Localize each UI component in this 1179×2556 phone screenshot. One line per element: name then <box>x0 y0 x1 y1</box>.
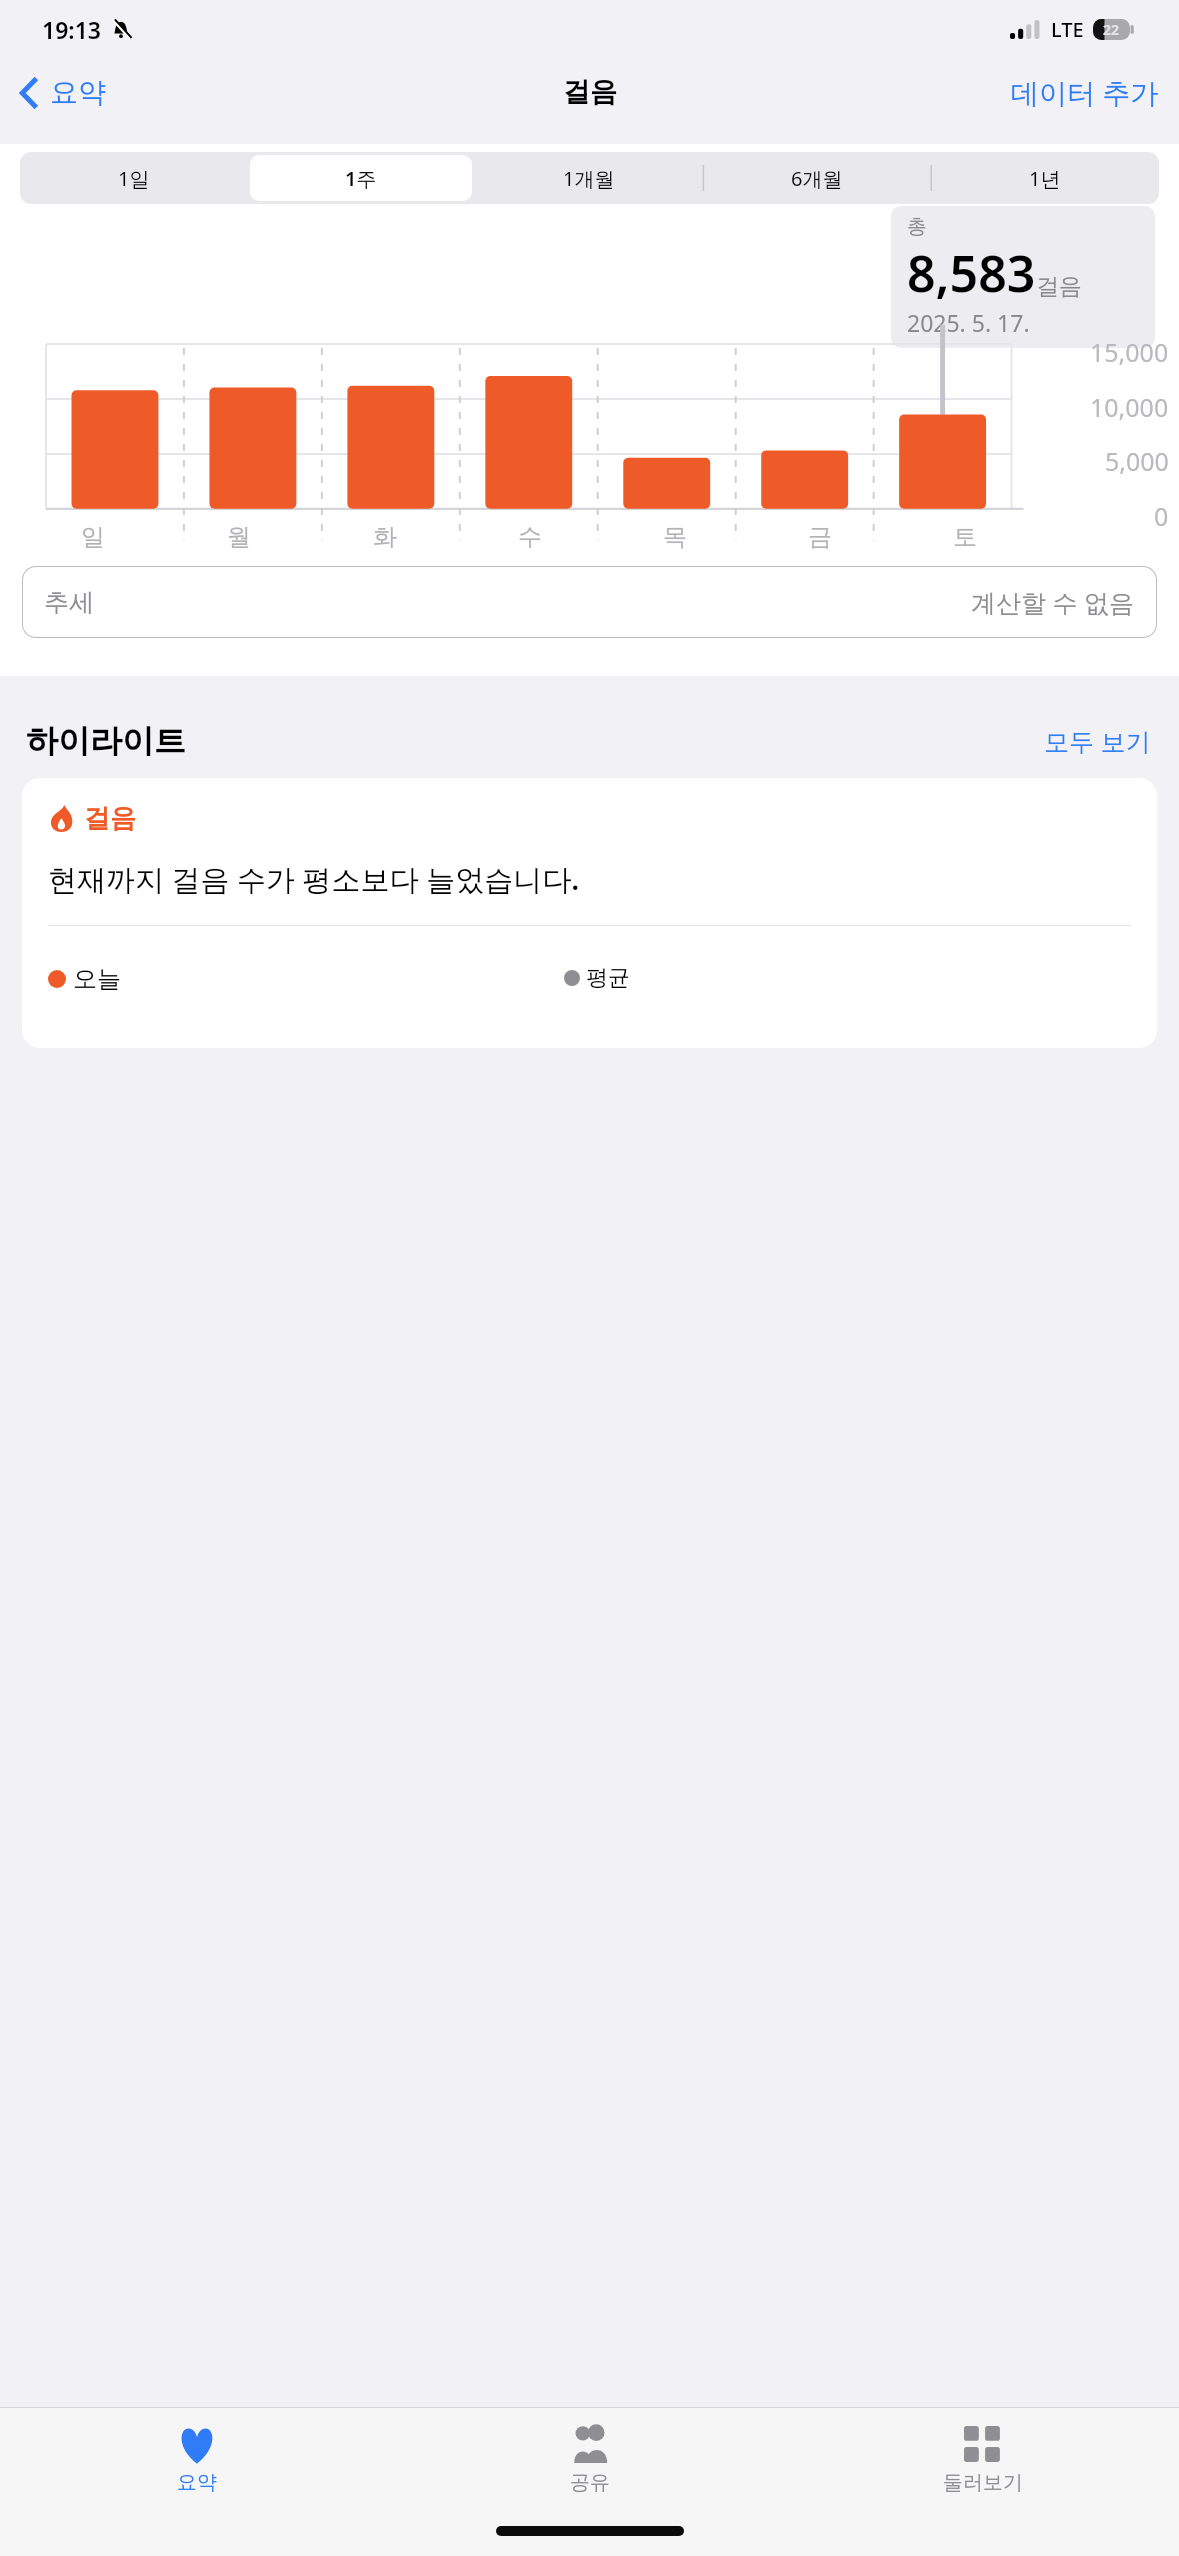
staticText: 둘러보기 <box>943 2470 1023 2495</box>
staticText: 목 <box>663 522 687 552</box>
staticText: 일 <box>81 522 105 552</box>
staticText: 1개월 <box>563 165 615 192</box>
staticText: 월 <box>227 522 251 552</box>
staticText: 하이라이트 <box>26 721 186 761</box>
staticText: 모두 보기 <box>1044 724 1151 758</box>
staticText: 19:13 <box>42 14 101 45</box>
button[interactable]: 1일 <box>23 155 244 201</box>
button[interactable]: 1주 <box>250 155 472 201</box>
staticText: 계산할 수 없음 <box>971 585 1135 619</box>
staticText: 22 <box>1103 20 1120 39</box>
button[interactable]: 데이터 추가 <box>991 65 1179 119</box>
staticText: 8,583 <box>907 239 1036 307</box>
button[interactable]: 1개월 <box>478 155 700 201</box>
staticText: 금 <box>808 522 832 552</box>
button[interactable]: 1년 <box>934 155 1156 201</box>
staticText: 5,000 <box>1105 444 1169 478</box>
staticText: 요약 <box>50 75 106 110</box>
staticText: 화 <box>373 522 397 552</box>
staticText: 평균 <box>586 964 630 992</box>
button[interactable]: 모두 보기 <box>1038 718 1157 764</box>
staticText: 토 <box>953 522 977 552</box>
button[interactable]: 추세 <box>22 566 1157 638</box>
staticText: 데이터 추가 <box>1011 73 1159 111</box>
staticText: 10,000 <box>1090 390 1169 424</box>
staticText: 1일 <box>118 165 150 192</box>
staticText: 현재까지 걸음 수가 평소보다 늘었습니다. <box>48 859 580 899</box>
staticText: 오늘 <box>73 964 121 994</box>
staticText: 6개월 <box>791 165 843 192</box>
button[interactable]: 걸음 <box>22 778 1157 1048</box>
button[interactable]: 요약 <box>0 67 120 118</box>
staticText: 2025. 5. 17. <box>907 307 1030 338</box>
staticText: 수 <box>518 522 542 552</box>
staticText: LTE <box>1051 16 1084 43</box>
button[interactable]: 6개월 <box>706 155 928 201</box>
button[interactable]: Browse <box>786 2408 1179 2505</box>
staticText: 걸음 <box>1036 272 1082 301</box>
staticText: 공유 <box>570 2470 610 2495</box>
staticText: 1년 <box>1029 165 1061 192</box>
staticText: 요약 <box>177 2470 217 2495</box>
button[interactable]: Summary <box>0 2408 393 2505</box>
staticText: 15,000 <box>1090 335 1169 369</box>
staticText: 0 <box>1154 499 1169 533</box>
button[interactable]: Sharing <box>393 2408 786 2505</box>
staticText: 걸음 <box>563 75 617 109</box>
staticText: 추세 <box>44 587 94 618</box>
staticText: 걸음 <box>84 802 136 835</box>
staticText: 1주 <box>345 165 377 192</box>
staticText: 총 <box>907 214 927 239</box>
